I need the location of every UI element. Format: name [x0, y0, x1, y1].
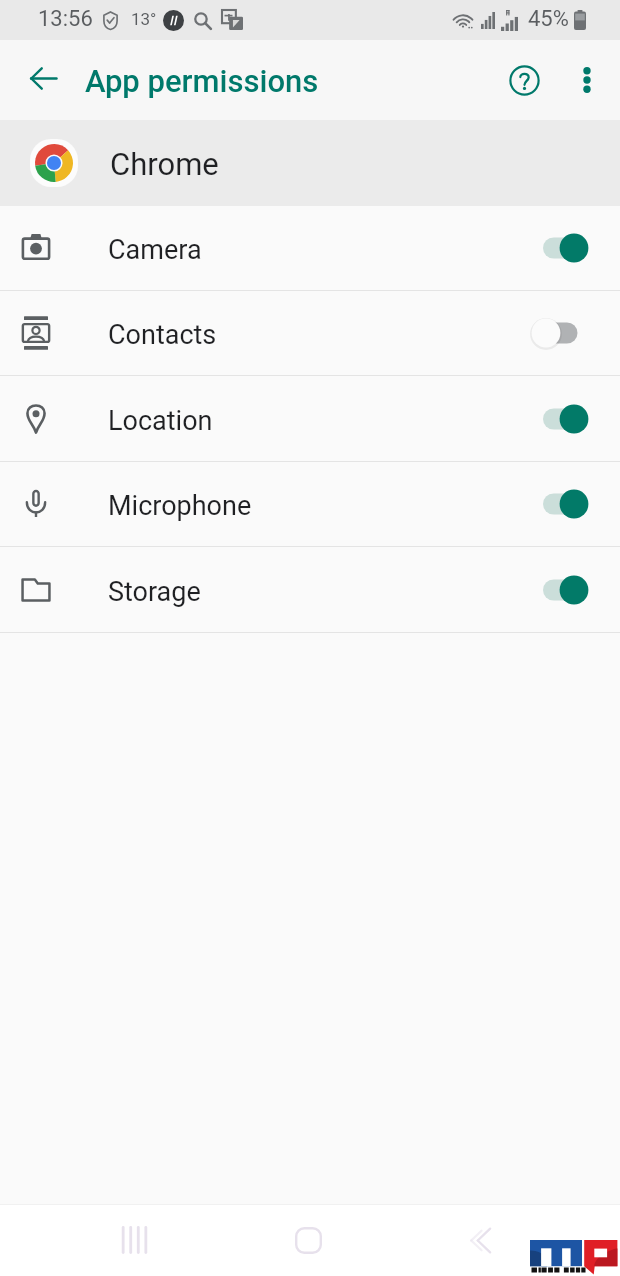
staticText: 45% — [528, 6, 569, 32]
button[interactable]: Home — [264, 1216, 352, 1264]
staticText: 13:56 — [38, 6, 93, 32]
button[interactable]: Recent apps — [90, 1216, 179, 1264]
button[interactable]: Microphone — [0, 462, 620, 546]
button[interactable]: Off — [533, 311, 590, 355]
staticText: Contacts — [108, 319, 217, 351]
button[interactable]: Contacts — [0, 291, 620, 375]
button[interactable]: On — [533, 397, 590, 441]
button[interactable]: Camera — [0, 206, 620, 290]
staticText: Location — [108, 405, 213, 437]
button[interactable]: Chrome — [0, 120, 620, 206]
staticText: Chrome — [110, 146, 219, 182]
button[interactable]: Location — [0, 376, 620, 461]
button[interactable]: On — [533, 568, 590, 612]
button[interactable]: Help — [495, 40, 553, 120]
staticText: Camera — [108, 234, 202, 266]
staticText: App permissions — [85, 63, 319, 99]
button[interactable]: More options — [553, 40, 620, 120]
staticText: Storage — [108, 576, 201, 608]
button[interactable]: Navigate up — [0, 40, 73, 120]
button[interactable]: On — [533, 482, 590, 526]
button[interactable]: On — [533, 226, 590, 270]
button[interactable]: Back — [437, 1216, 525, 1264]
staticText: Microphone — [108, 490, 252, 522]
button[interactable]: Storage — [0, 547, 620, 632]
staticText: 13° — [131, 9, 157, 29]
